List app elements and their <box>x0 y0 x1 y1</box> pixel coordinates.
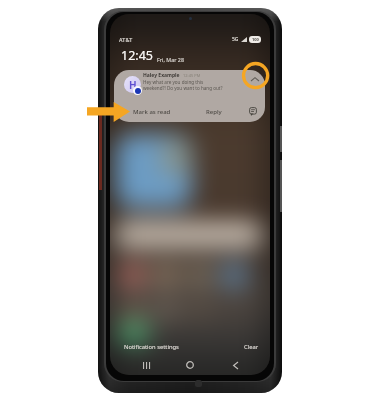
button[interactable]: Clear <box>242 341 261 353</box>
staticText: Reply <box>206 108 222 116</box>
staticText: Clear <box>244 343 259 351</box>
staticText: H <box>129 78 137 92</box>
button[interactable]: Notification settings <box>122 341 181 353</box>
staticText: Notification settings <box>124 343 179 351</box>
staticText: Mark as read <box>133 108 171 116</box>
staticText: Hey what are you doing this weekend?! Do… <box>143 79 223 91</box>
button[interactable]: Recent apps <box>137 356 155 374</box>
staticText: 5G <box>232 36 239 43</box>
staticText: 100 <box>252 37 259 42</box>
button[interactable]: Collapse notification <box>247 71 262 86</box>
staticText: 12:45 <box>121 47 153 64</box>
button[interactable]: H <box>114 70 265 122</box>
button[interactable]: Home <box>181 356 199 374</box>
staticText: AT&T <box>119 36 133 43</box>
staticText: 12:45 PM <box>183 73 201 78</box>
button[interactable]: Mark as read <box>131 106 173 118</box>
button[interactable]: Reply <box>204 106 224 118</box>
other: Highlight on collapse control <box>242 62 270 90</box>
staticText: Fri, Mar 28 <box>157 56 184 63</box>
staticText: Haley Example <box>143 72 180 79</box>
other: Arrow pointing at Mark as read <box>87 102 130 122</box>
button[interactable]: Back <box>226 356 244 374</box>
button[interactable]: Open as bubble <box>247 105 259 117</box>
